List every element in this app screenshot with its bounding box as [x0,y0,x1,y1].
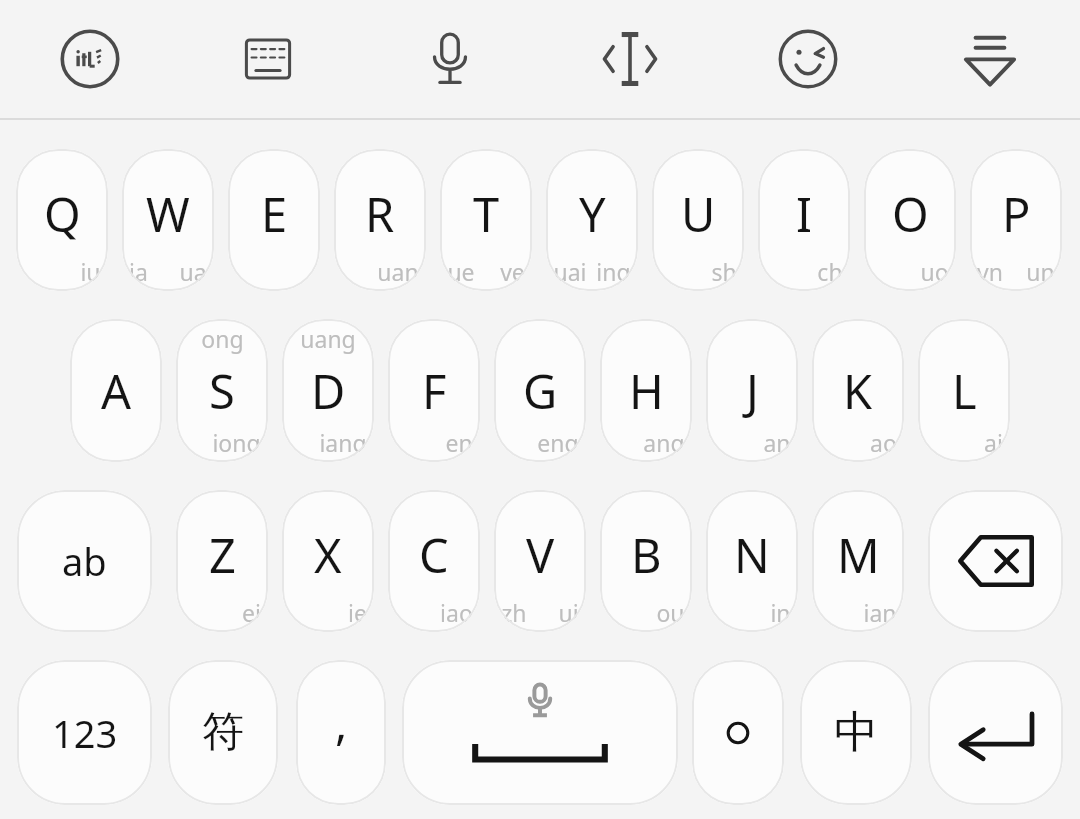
button[interactable]: C [388,490,480,632]
staticText: R [365,182,395,246]
staticText: X [314,523,342,587]
staticText: J [746,359,759,423]
staticText: G [523,359,558,423]
staticText: , [335,691,348,754]
staticText: vn [977,256,1003,287]
staticText: ia [129,256,148,287]
button[interactable]: G [494,319,586,462]
button[interactable]: Chinese English toggle [800,660,912,805]
button[interactable]: F [388,319,480,462]
staticText: ua [179,256,207,287]
staticText: Y [579,182,606,246]
staticText: T [473,182,500,246]
staticText: ui [558,597,579,628]
button[interactable]: H [600,319,692,462]
staticText: ai [984,427,1003,458]
button[interactable]: I [758,149,850,291]
staticText: H [629,359,664,423]
staticText: N [734,523,770,587]
staticText: F [422,359,447,423]
button[interactable]: T [440,149,532,291]
staticText: iu [80,256,101,287]
button[interactable]: Period [692,660,784,805]
staticText: ian [863,597,897,628]
button[interactable]: M [812,490,904,632]
staticText: V [526,523,555,587]
staticText: ab [62,535,107,587]
staticText: Z [209,523,236,587]
staticText: ing [596,256,631,287]
staticText: ei [242,597,261,628]
staticText: C [419,523,449,587]
staticText: ie [348,597,367,628]
staticText: 123 [52,707,118,759]
staticText: uan [377,256,419,287]
staticText: iong [212,427,261,458]
button[interactable]: Move cursor [584,13,676,105]
staticText: ong [201,323,244,354]
staticText: M [837,523,880,587]
staticText: 符 [202,706,244,759]
staticText: A [101,359,132,423]
staticText: W [146,182,190,246]
button[interactable]: O [864,149,956,291]
staticText: U [681,182,716,246]
button[interactable]: Space [402,660,678,805]
button[interactable]: Backspace [928,490,1063,632]
staticText: ang [643,427,685,458]
staticText: ao [870,427,897,458]
staticText: un [1026,256,1055,287]
staticText: Q [44,182,81,246]
button[interactable]: Hide keyboard [944,13,1036,105]
staticText: uang [300,323,356,354]
button[interactable]: W [122,149,214,291]
button[interactable]: Input method [44,13,136,105]
button[interactable]: Z [176,490,268,632]
staticText: eng [537,427,579,458]
button[interactable]: V [494,490,586,632]
button[interactable]: E [228,149,320,291]
staticText: ou [656,597,685,628]
button[interactable]: Keyboard layout [222,13,314,105]
staticText: uai [553,256,587,287]
staticText: E [261,182,288,246]
button[interactable]: D [282,319,374,462]
staticText: iao [440,597,473,628]
staticText: B [631,523,662,587]
button[interactable]: ab [17,490,152,632]
button[interactable]: Comma [296,660,386,805]
button[interactable]: U [652,149,744,291]
button[interactable]: Y [546,149,638,291]
button[interactable]: X [282,490,374,632]
staticText: uo [920,256,949,287]
button[interactable]: S [176,319,268,462]
button[interactable]: J [706,319,798,462]
staticText: iang [319,427,367,458]
button[interactable]: Q [16,149,108,291]
button[interactable]: Symbols [168,660,278,805]
button[interactable]: Voice input [404,13,496,105]
staticText: in [770,597,791,628]
button[interactable]: K [812,319,904,462]
staticText: zh [501,597,527,628]
staticText: P [1002,182,1031,246]
staticText: an [763,427,791,458]
button[interactable]: A [70,319,162,462]
button[interactable]: 123 [17,660,152,805]
staticText: S [209,359,235,423]
staticText: K [843,359,873,423]
staticText: en [445,427,473,458]
staticText: O [892,182,929,246]
button[interactable]: P [970,149,1062,291]
button[interactable]: L [918,319,1010,462]
button[interactable]: Enter [928,660,1063,805]
button[interactable]: N [706,490,798,632]
staticText: I [796,182,812,246]
staticText: 中 [834,705,878,760]
staticText: ch [817,256,843,287]
staticText: ue [447,256,475,287]
button[interactable]: Emoji [762,13,854,105]
staticText: L [952,359,977,423]
button[interactable]: B [600,490,692,632]
button[interactable]: R [334,149,426,291]
